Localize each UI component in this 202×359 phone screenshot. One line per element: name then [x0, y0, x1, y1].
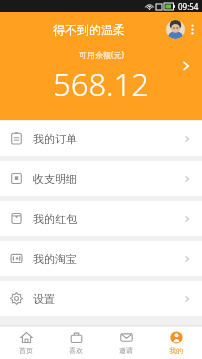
- button[interactable]: 我的: [152, 326, 200, 359]
- staticText: 设置: [33, 292, 55, 306]
- staticText: 邀请: [119, 346, 133, 355]
- staticText: 我的红包: [33, 212, 77, 226]
- button[interactable]: 我的淘宝: [0, 241, 202, 276]
- staticText: 收支明细: [33, 172, 77, 186]
- button[interactable]: 我的订单: [0, 121, 202, 156]
- button[interactable]: Profile avatar: [166, 20, 185, 39]
- staticText: 喜欢: [69, 346, 83, 355]
- staticText: 568.12: [53, 63, 150, 105]
- button[interactable]: 我的红包: [0, 201, 202, 236]
- button[interactable]: More options: [187, 19, 198, 39]
- button[interactable]: 可用余额(元): [0, 49, 202, 105]
- button[interactable]: 设置: [0, 281, 202, 316]
- button[interactable]: 喜欢: [52, 326, 100, 359]
- other: Balance details: [179, 59, 193, 73]
- staticText: 我的订单: [33, 132, 77, 146]
- button[interactable]: 收支明细: [0, 161, 202, 196]
- staticText: 得不到的温柔: [53, 22, 125, 37]
- button[interactable]: 首页: [2, 326, 50, 359]
- staticText: 我的淘宝: [33, 252, 77, 266]
- staticText: 09:54: [178, 1, 199, 12]
- button[interactable]: 邀请: [102, 326, 150, 359]
- staticText: 可用余额(元): [79, 49, 124, 60]
- staticText: 首页: [19, 346, 33, 355]
- staticText: 我的: [169, 346, 183, 355]
